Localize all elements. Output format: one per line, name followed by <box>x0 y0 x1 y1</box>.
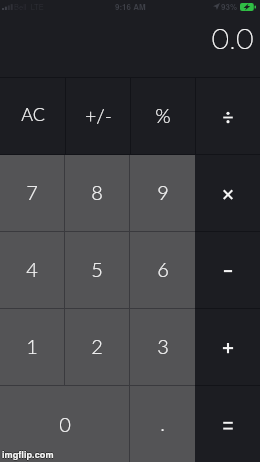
staticText: 5 <box>91 257 103 281</box>
button[interactable]: Subtract <box>195 231 260 308</box>
staticText: 6 <box>157 257 169 281</box>
staticText: Bell LTE <box>14 1 44 12</box>
staticText: imgflip.com <box>1 448 53 461</box>
button[interactable]: All clear <box>0 77 65 154</box>
button[interactable]: Divide <box>196 77 260 154</box>
staticText: 93% <box>221 1 238 12</box>
staticText: . <box>160 411 165 435</box>
staticText: % <box>155 103 171 127</box>
staticText: imgflip.com <box>3 448 55 461</box>
staticText: +/- <box>85 104 112 127</box>
button[interactable]: Zero <box>0 385 129 462</box>
button[interactable]: 8 <box>65 154 129 231</box>
button[interactable]: 1 <box>0 308 64 385</box>
button[interactable]: Add <box>195 308 260 385</box>
staticText: imgflip.com <box>2 448 54 461</box>
staticText: 1 <box>26 334 38 358</box>
staticText: imgflip.com <box>2 447 54 460</box>
staticText: 4 <box>26 257 38 281</box>
staticText: 7 <box>26 180 38 204</box>
staticText: 9:16 AM <box>115 1 146 12</box>
button[interactable]: Plus minus <box>66 77 130 154</box>
button[interactable]: 2 <box>65 308 129 385</box>
staticText: 9 <box>157 180 169 204</box>
button[interactable]: 3 <box>130 308 195 385</box>
button[interactable]: Percent <box>131 77 195 154</box>
button[interactable]: Decimal point <box>130 385 195 462</box>
staticText: imgflip.com <box>2 449 54 462</box>
button[interactable]: 4 <box>0 231 64 308</box>
staticText: 0 <box>59 412 71 436</box>
button[interactable]: Multiply <box>195 154 260 231</box>
staticText: 3 <box>157 334 169 358</box>
staticText: AC <box>21 103 45 125</box>
button[interactable]: 6 <box>130 231 195 308</box>
button[interactable]: 7 <box>0 154 64 231</box>
staticText: 2 <box>91 334 103 358</box>
button[interactable]: 5 <box>65 231 129 308</box>
staticText: 8 <box>91 180 103 204</box>
staticText: 0.0 <box>211 21 255 56</box>
button[interactable]: Equals <box>195 385 260 462</box>
button[interactable]: 9 <box>130 154 195 231</box>
